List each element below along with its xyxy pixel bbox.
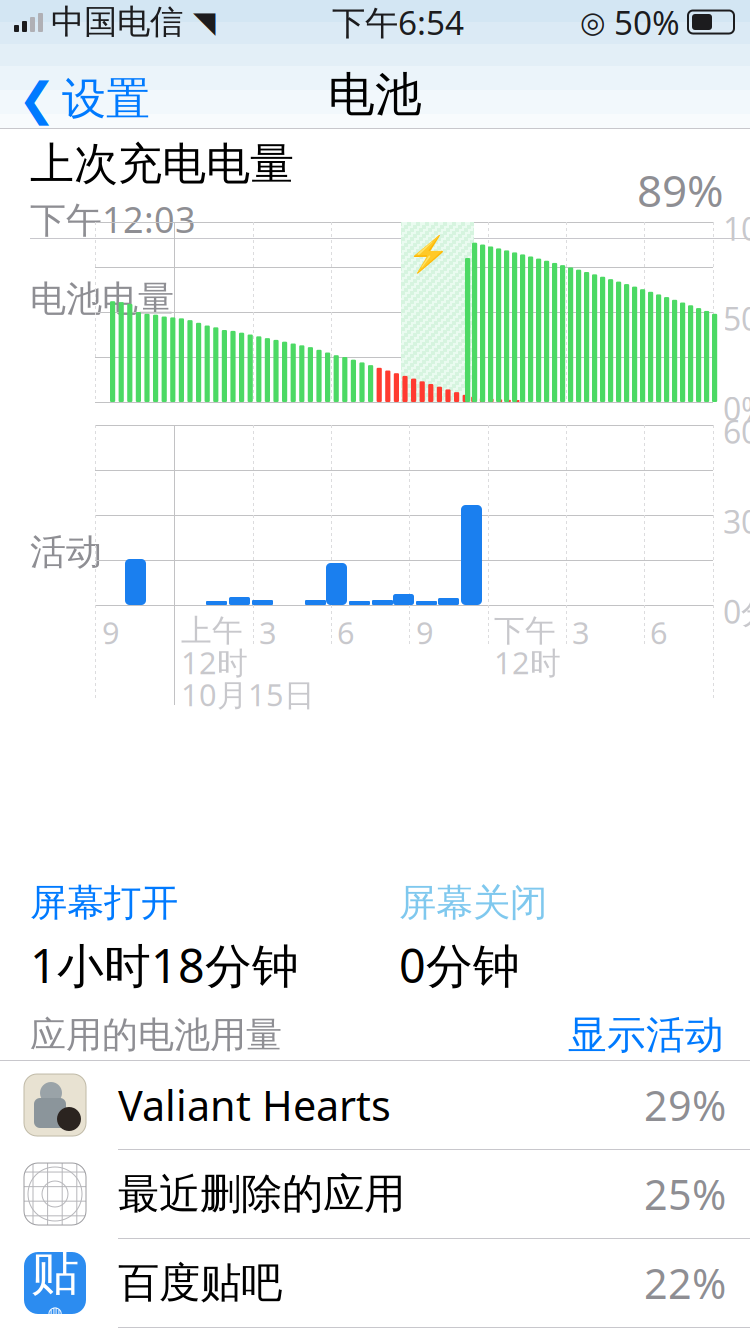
staticText: 设置 [62,72,150,126]
staticText: 下午12:03 [30,195,196,243]
staticText: 3 [572,612,590,653]
staticText: 50% [723,297,750,339]
staticText: 中国电信 [51,1,183,42]
staticText: 6 [650,612,668,653]
button[interactable]: 最近删除的应用 [0,1150,750,1239]
staticText: 100% [723,207,750,249]
button[interactable]: ❮ [0,62,150,136]
staticText: 9 [102,612,120,653]
staticText: 电池 [328,66,422,123]
staticText: 9 [416,612,434,653]
staticText: 29% [644,1078,726,1132]
staticText: Valiant Hearts [118,1078,391,1132]
staticText: 6 [337,612,355,653]
staticText: ◥ [193,5,216,39]
staticText: 贴 [31,1244,79,1303]
button[interactable]: 显示活动 [568,1005,750,1065]
staticText: ◎ [580,5,606,39]
staticText: 下午6:54 [332,0,464,44]
staticText: 上午 [181,612,243,650]
staticText: 屏幕关闭 [399,880,547,926]
staticText: 22% [644,1256,726,1310]
staticText: 百度贴吧 [118,1258,282,1308]
staticText: 最近删除的应用 [118,1169,405,1219]
staticText: 活动 [30,530,102,574]
staticText: ❮ [18,73,56,125]
staticText: 0% [723,387,750,429]
staticText: 显示活动 [568,1011,724,1059]
staticText: 上次充电电量 [30,137,294,191]
staticText: 12时 [494,642,561,683]
staticText: 下午 [494,612,556,650]
staticText: ◍ [47,1303,62,1322]
staticText: 30分钟 [723,500,750,542]
staticText: 0分钟 [399,934,520,996]
staticText: 3 [259,612,277,653]
staticText: 1小时18分钟 [30,934,299,996]
staticText: ⚡ [407,234,450,274]
staticText: 12时 [181,642,248,683]
staticText: 50% [614,0,680,44]
button[interactable]: Valiant Hearts [0,1061,750,1150]
staticText: 电池电量 [30,277,174,321]
staticText: 0分钟 [723,590,750,632]
staticText: 60分钟 [723,410,750,452]
button[interactable]: 贴 [0,1239,750,1328]
staticText: 10月15日 [181,674,315,715]
staticText: 89% [637,161,724,219]
staticText: 屏幕打开 [30,880,178,926]
staticText: 应用的电池用量 [30,1013,282,1057]
staticText: 25% [644,1167,726,1221]
